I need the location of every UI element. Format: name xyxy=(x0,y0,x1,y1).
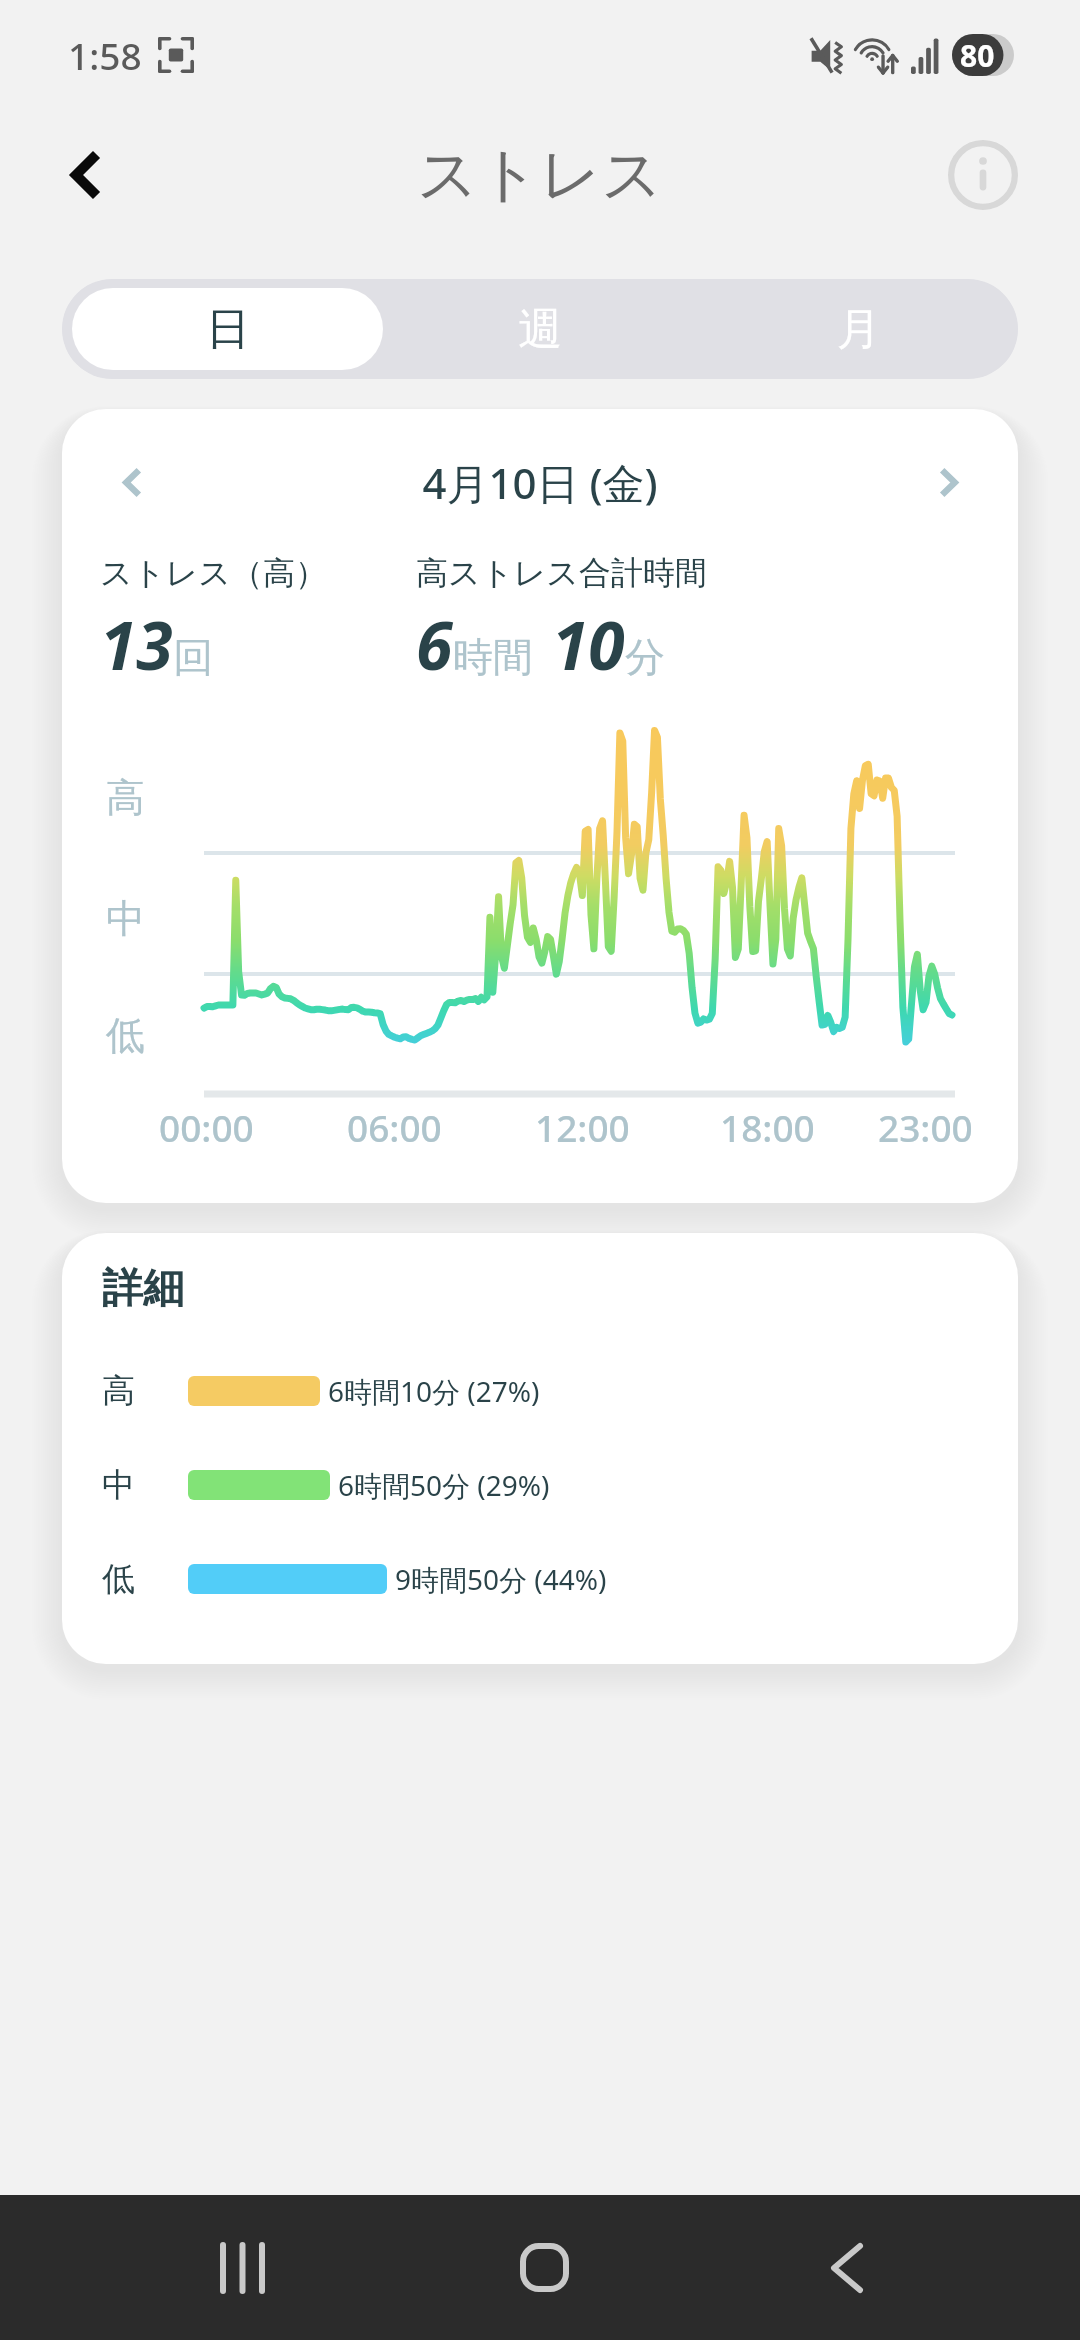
button[interactable]: Information xyxy=(942,134,1024,216)
staticText: 日 xyxy=(206,302,250,357)
staticText: 低 xyxy=(102,1558,135,1600)
staticText: 高 xyxy=(106,773,145,822)
button[interactable]: Next day xyxy=(912,446,984,518)
button[interactable]: Back xyxy=(38,129,130,221)
staticText: 分 xyxy=(625,632,665,682)
button[interactable]: Previous day xyxy=(96,446,168,518)
staticText: 18:00 xyxy=(720,1102,815,1152)
staticText: 高ストレス合計時間 xyxy=(416,553,707,593)
button[interactable]: Home xyxy=(474,2195,614,2340)
staticText: 6 xyxy=(416,599,453,689)
staticText: 高 xyxy=(102,1370,135,1412)
staticText: 回 xyxy=(173,632,213,682)
staticText: ストレス xyxy=(417,137,663,213)
staticText: 10 xyxy=(552,599,625,689)
staticText: 06:00 xyxy=(347,1102,442,1152)
staticText: 4月10日 (金) xyxy=(168,454,912,511)
staticText: 月 xyxy=(837,302,881,357)
button[interactable]: 低 xyxy=(102,1556,607,1602)
staticText: 低 xyxy=(106,1011,145,1060)
staticText: 6時間10分 (27%) xyxy=(328,1372,540,1410)
staticText: ストレス（高） xyxy=(100,553,327,593)
button[interactable]: Recent apps xyxy=(172,2195,312,2340)
staticText: 12:00 xyxy=(535,1102,630,1152)
staticText: 00:00 xyxy=(159,1102,254,1152)
staticText: 時間 xyxy=(453,632,533,682)
staticText: 中 xyxy=(106,894,145,943)
staticText: 80 xyxy=(960,35,995,76)
staticText: 詳細 xyxy=(102,1263,184,1315)
button[interactable]: 高 xyxy=(102,1368,540,1414)
button[interactable]: Back xyxy=(777,2195,917,2340)
staticText: 週 xyxy=(518,302,562,357)
staticText: 13 xyxy=(100,599,173,689)
button[interactable]: 中 xyxy=(102,1462,550,1508)
button[interactable]: 日 xyxy=(62,279,380,379)
staticText: 23:00 xyxy=(878,1102,973,1152)
button[interactable]: 月 xyxy=(699,279,1018,379)
staticText: 9時間50分 (44%) xyxy=(395,1560,607,1598)
button[interactable]: 週 xyxy=(380,279,699,379)
staticText: 中 xyxy=(102,1464,135,1506)
staticText: 1:58 xyxy=(68,30,142,80)
staticText: 6時間50分 (29%) xyxy=(338,1466,550,1504)
